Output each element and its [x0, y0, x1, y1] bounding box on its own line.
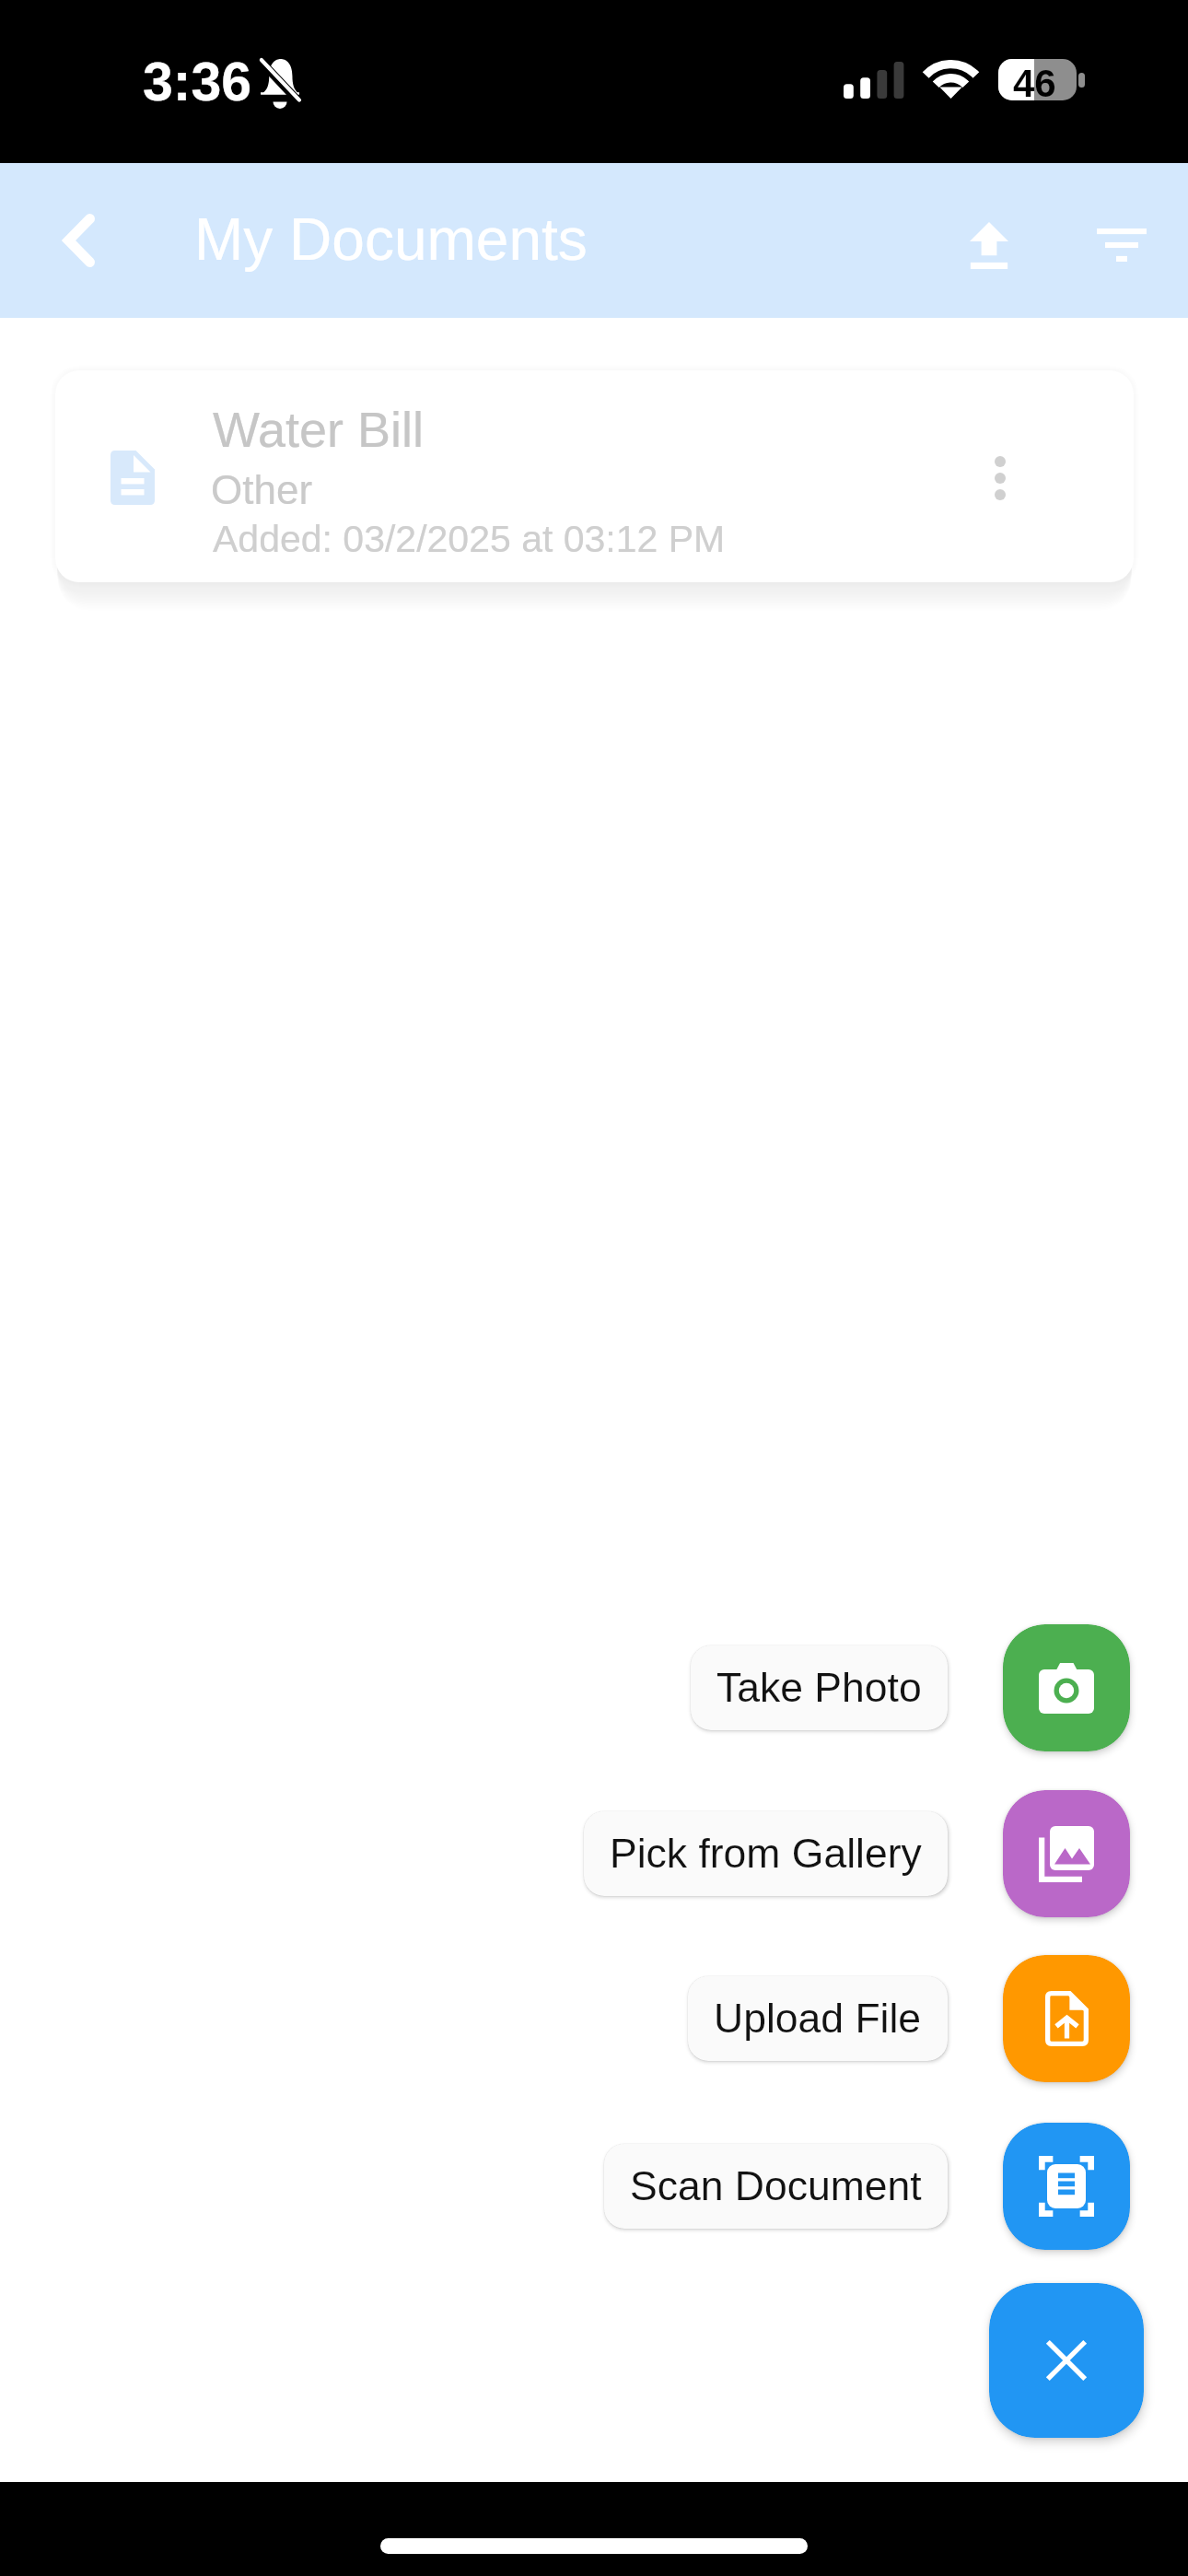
- staticText: Other: [211, 467, 313, 512]
- staticText: Scan Document: [630, 2163, 922, 2209]
- staticText: Pick from Gallery: [610, 1831, 922, 1877]
- staticText: 3:36: [143, 52, 252, 112]
- button[interactable]: Water Bill: [55, 370, 1134, 582]
- button[interactable]: Upload File: [688, 1976, 948, 2061]
- button[interactable]: Pick from Gallery: [1003, 1790, 1130, 1917]
- button[interactable]: Upload File: [1003, 1955, 1130, 2082]
- staticText: My Documents: [194, 206, 588, 273]
- staticText: 46: [1013, 62, 1056, 100]
- button[interactable]: Pick from Gallery: [584, 1811, 948, 1896]
- button[interactable]: Filter: [1080, 204, 1163, 287]
- staticText: Water Bill: [213, 402, 425, 457]
- button[interactable]: Scan Document: [604, 2144, 948, 2229]
- button[interactable]: Back: [42, 204, 116, 277]
- button[interactable]: More options: [963, 441, 1037, 515]
- button[interactable]: Take Photo: [691, 1645, 948, 1730]
- staticText: Added: 03/2/2025 at 03:12 PM: [213, 518, 726, 560]
- staticText: Take Photo: [716, 1665, 922, 1711]
- button[interactable]: Close menu: [989, 2283, 1144, 2438]
- staticText: Upload File: [714, 1996, 922, 2042]
- button[interactable]: Scan Document: [1003, 2123, 1130, 2250]
- button[interactable]: Take Photo: [1003, 1624, 1130, 1751]
- button[interactable]: Upload: [948, 204, 1031, 287]
